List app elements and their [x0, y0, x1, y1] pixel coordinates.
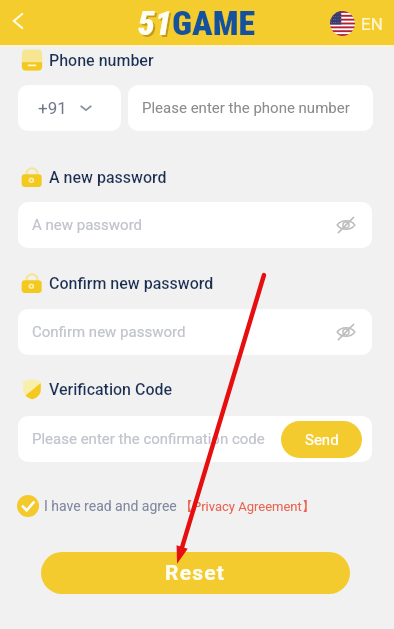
staticText: EN	[361, 14, 383, 34]
staticText: Reset	[165, 561, 226, 586]
button[interactable]: Agree	[17, 495, 39, 517]
button[interactable]: Back	[0, 3, 35, 38]
staticText: A new password	[32, 216, 143, 234]
staticText: Confirm new password	[32, 323, 186, 341]
button[interactable]: 【Privacy Agreement】	[180, 498, 315, 514]
staticText: +91	[38, 98, 67, 118]
staticText: Please enter the phone number	[142, 99, 350, 117]
staticText: 51	[138, 3, 172, 43]
button[interactable]: Please enter the phone number	[128, 85, 373, 131]
button[interactable]: +91	[18, 85, 121, 131]
staticText: Send	[305, 431, 339, 449]
staticText: Confirm new password	[49, 274, 214, 293]
button[interactable]: Send	[281, 421, 362, 458]
button[interactable]: Show password	[332, 211, 360, 239]
staticText: Verification Code	[49, 380, 173, 399]
staticText: GAME	[172, 3, 256, 43]
staticText: Phone number	[49, 51, 154, 70]
button[interactable]: Show password	[332, 318, 360, 346]
staticText: A new password	[49, 168, 167, 187]
staticText: Please enter the confirmation code	[32, 430, 265, 448]
staticText: I have read and agree	[44, 498, 177, 514]
button[interactable]: Reset	[41, 552, 350, 594]
button[interactable]: Language EN	[330, 11, 383, 36]
staticText: 51	[140, 5, 174, 45]
staticText: 【Privacy Agreement】	[180, 498, 315, 514]
